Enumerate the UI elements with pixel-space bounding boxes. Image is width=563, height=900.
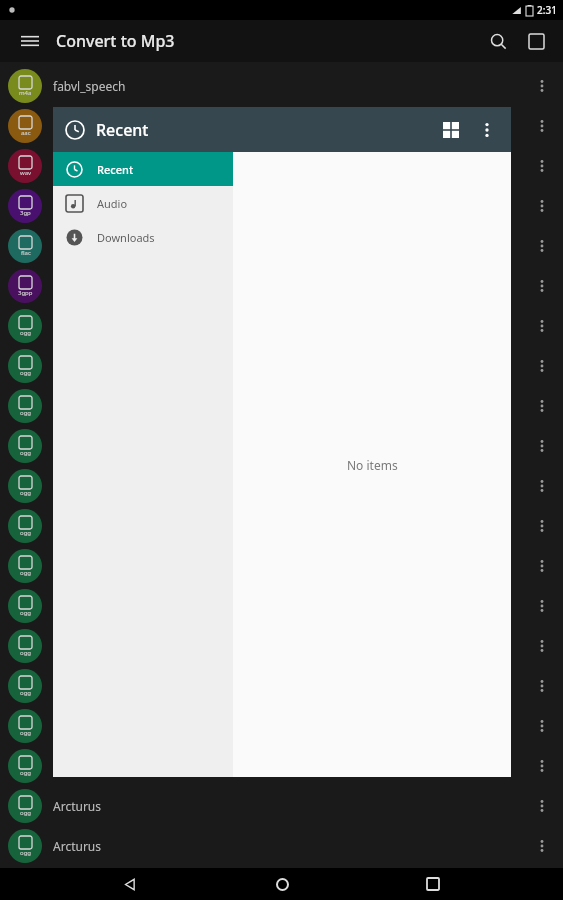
button[interactable]: ogg bbox=[0, 666, 563, 706]
button[interactable]: ogg bbox=[0, 426, 563, 466]
staticText: Convert to Mp3 bbox=[56, 30, 175, 52]
staticText: ogg bbox=[20, 849, 32, 857]
button[interactable]: More options bbox=[527, 151, 557, 181]
button[interactable]: ogg bbox=[0, 466, 563, 506]
button[interactable]: ogg bbox=[0, 626, 563, 666]
button[interactable]: ogg bbox=[0, 786, 563, 826]
button[interactable]: More options bbox=[527, 231, 557, 261]
button[interactable]: ogg bbox=[0, 386, 563, 426]
staticText: 2:31 bbox=[537, 3, 557, 17]
button[interactable]: More options bbox=[527, 631, 557, 661]
button[interactable]: More options bbox=[527, 311, 557, 341]
button[interactable]: ogg bbox=[0, 746, 563, 786]
button[interactable]: More options bbox=[527, 191, 557, 221]
button[interactable]: Grid view bbox=[433, 112, 469, 148]
button[interactable]: More options bbox=[527, 111, 557, 141]
button[interactable]: aac bbox=[0, 106, 563, 146]
staticText: fabvl_speech bbox=[53, 78, 126, 94]
staticText: ogg bbox=[20, 609, 32, 617]
button[interactable]: More options bbox=[527, 831, 557, 861]
button[interactable]: ogg bbox=[0, 306, 563, 346]
button[interactable]: More options bbox=[527, 511, 557, 541]
button[interactable]: ogg bbox=[0, 506, 563, 546]
button[interactable]: More options bbox=[527, 351, 557, 381]
staticText: ogg bbox=[20, 449, 32, 457]
staticText: Arcturus bbox=[53, 798, 102, 814]
staticText: wav bbox=[20, 169, 32, 177]
button[interactable]: ogg bbox=[0, 346, 563, 386]
button[interactable]: More options bbox=[527, 591, 557, 621]
button[interactable]: More options bbox=[527, 71, 557, 101]
staticText: flac bbox=[21, 249, 31, 257]
button[interactable]: Search bbox=[481, 24, 515, 58]
button[interactable]: More options bbox=[527, 551, 557, 581]
button[interactable]: flac bbox=[0, 226, 563, 266]
button[interactable]: 3gpp bbox=[0, 266, 563, 306]
staticText: ogg bbox=[20, 769, 32, 777]
button[interactable]: Recent apps bbox=[411, 868, 455, 900]
staticText: ogg bbox=[20, 569, 32, 577]
staticText: No items bbox=[347, 457, 398, 473]
staticText: 3gp bbox=[20, 209, 31, 217]
button[interactable]: ogg bbox=[0, 586, 563, 626]
button[interactable]: More options bbox=[527, 431, 557, 461]
button[interactable]: More options bbox=[527, 391, 557, 421]
button[interactable]: Home bbox=[260, 868, 304, 900]
button[interactable]: ogg bbox=[0, 546, 563, 586]
staticText: Arcturus bbox=[53, 838, 102, 854]
button[interactable]: More options bbox=[469, 112, 505, 148]
staticText: ogg bbox=[20, 409, 32, 417]
button[interactable]: 3gp bbox=[0, 186, 563, 226]
staticText: ogg bbox=[20, 329, 32, 337]
staticText: m4a bbox=[19, 89, 32, 97]
button[interactable]: More options bbox=[527, 751, 557, 781]
button[interactable]: More options bbox=[527, 711, 557, 741]
button[interactable]: More options bbox=[527, 271, 557, 301]
button[interactable]: Back bbox=[108, 868, 152, 900]
staticText: Recent bbox=[96, 119, 149, 141]
staticText: ogg bbox=[20, 369, 32, 377]
staticText: ogg bbox=[20, 689, 32, 697]
staticText: ogg bbox=[20, 729, 32, 737]
staticText: ogg bbox=[20, 529, 32, 537]
staticText: ogg bbox=[20, 489, 32, 497]
button[interactable]: Downloads bbox=[53, 220, 233, 254]
staticText: Audio bbox=[97, 196, 128, 211]
staticText: ogg bbox=[20, 809, 32, 817]
button[interactable]: More options bbox=[527, 671, 557, 701]
button[interactable]: Open navigation menu bbox=[14, 25, 46, 57]
button[interactable]: ogg bbox=[0, 826, 563, 866]
button[interactable]: ogg bbox=[0, 706, 563, 746]
button[interactable]: Select bbox=[519, 24, 553, 58]
button[interactable]: m4a bbox=[0, 66, 563, 106]
button[interactable]: More options bbox=[527, 791, 557, 821]
staticText: Recent bbox=[97, 162, 134, 177]
button[interactable]: Recent bbox=[53, 152, 233, 186]
staticText: 3gpp bbox=[18, 289, 33, 297]
staticText: Downloads bbox=[97, 230, 155, 245]
button[interactable]: Audio bbox=[53, 186, 233, 220]
staticText: ogg bbox=[20, 649, 32, 657]
button[interactable]: More options bbox=[527, 471, 557, 501]
button[interactable]: wav bbox=[0, 146, 563, 186]
staticText: aac bbox=[21, 129, 31, 137]
